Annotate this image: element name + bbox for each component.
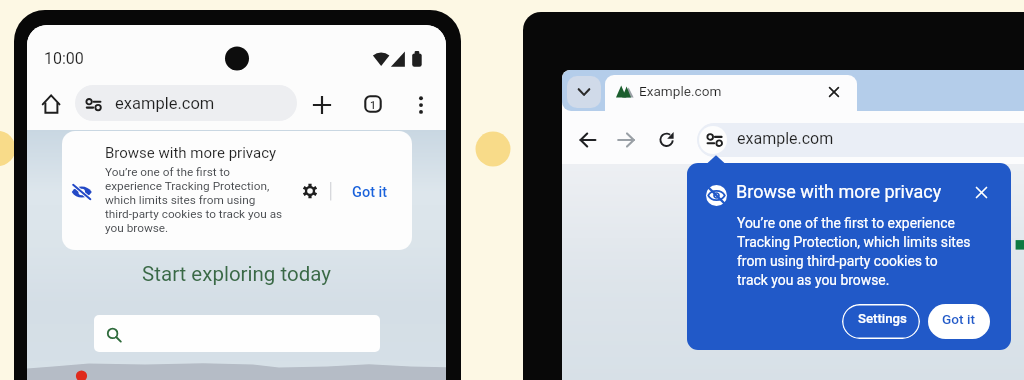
button[interactable]: Close tab bbox=[821, 79, 847, 105]
button[interactable]: Close bbox=[968, 179, 995, 206]
button[interactable]: Back bbox=[576, 128, 600, 152]
staticText: example.com bbox=[115, 94, 215, 113]
staticText: Settings bbox=[858, 311, 907, 326]
staticText: Got it bbox=[942, 311, 975, 327]
staticText: example.com bbox=[737, 129, 834, 148]
staticText: Example.com bbox=[639, 83, 722, 99]
button[interactable]: Home bbox=[40, 92, 64, 116]
button[interactable]: Got it bbox=[928, 304, 990, 339]
staticText: Browse with more privacy bbox=[736, 181, 942, 202]
staticText: Start exploring today bbox=[27, 262, 446, 286]
button[interactable]: example.com bbox=[75, 85, 297, 121]
button[interactable]: More options bbox=[409, 93, 433, 117]
staticText: You’re one of the first to experience Tr… bbox=[105, 165, 283, 235]
button[interactable]: example.com bbox=[697, 123, 1024, 157]
staticText: 10:00 bbox=[44, 49, 84, 68]
staticText: 1 bbox=[370, 99, 376, 111]
staticText: You’re one of the first to experience Tr… bbox=[737, 215, 971, 288]
staticText: Browse with more privacy bbox=[105, 144, 277, 162]
button[interactable]: Forward bbox=[614, 128, 638, 152]
button[interactable]: New tab bbox=[310, 93, 334, 117]
button[interactable]: Tabs bbox=[361, 92, 385, 116]
button[interactable]: Settings bbox=[299, 180, 321, 202]
button[interactable]: Browse with more privacy bbox=[62, 131, 412, 250]
button[interactable]: Got it bbox=[346, 179, 393, 202]
staticText: Got it bbox=[352, 184, 388, 201]
button[interactable]: Search tabs bbox=[567, 76, 601, 108]
button[interactable]: Settings bbox=[842, 304, 920, 339]
button[interactable]: Example.com bbox=[605, 75, 857, 111]
button[interactable]: Reload bbox=[655, 128, 679, 152]
button[interactable]: Search bbox=[94, 315, 380, 352]
